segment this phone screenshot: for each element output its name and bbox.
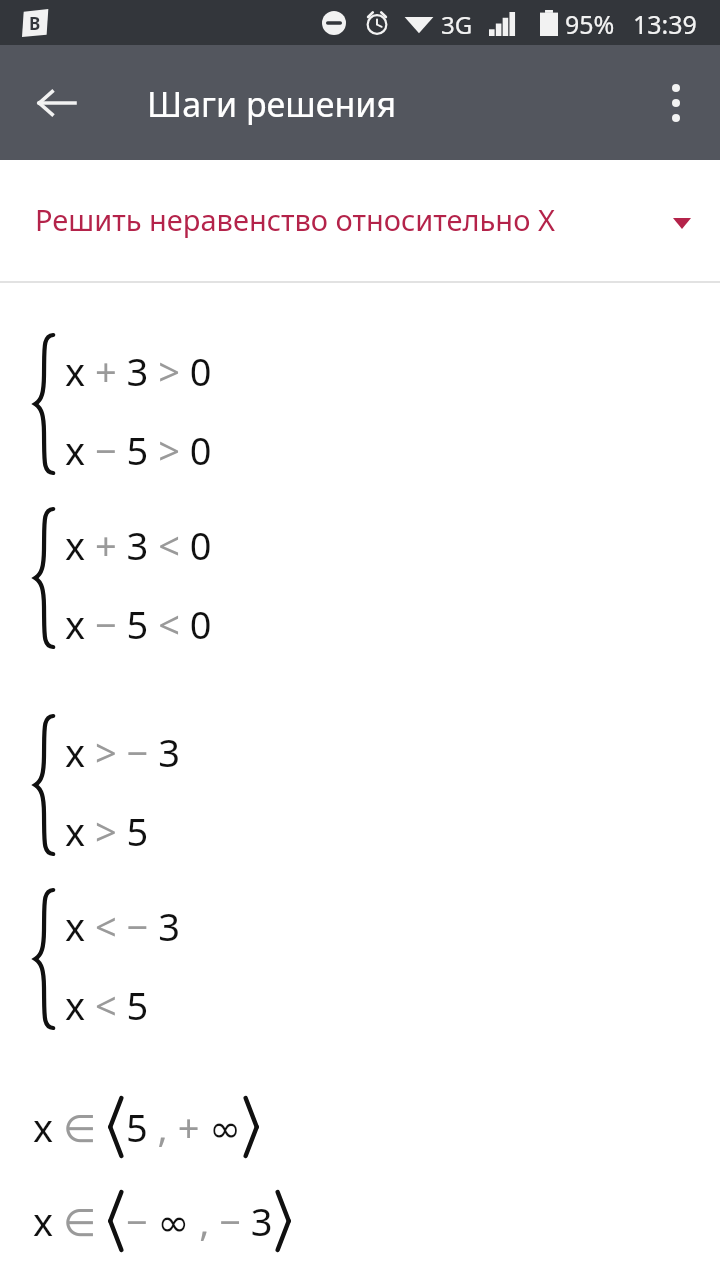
staticText: 95% bbox=[565, 7, 615, 41]
staticText: x < 5 bbox=[65, 979, 149, 1031]
staticText: x ∈ bbox=[33, 1101, 106, 1153]
button[interactable]: Решить неравенство относительно X bbox=[0, 160, 720, 282]
staticText: x − 5 > 0 bbox=[65, 424, 212, 476]
staticText: x > − 3 bbox=[65, 726, 180, 778]
staticText: x < − 3 bbox=[65, 900, 180, 952]
staticText: Решить неравенство относительно X bbox=[35, 200, 555, 239]
staticText: 3G bbox=[441, 8, 473, 41]
staticText: B bbox=[29, 12, 41, 35]
staticText: x − 5 < 0 bbox=[65, 598, 212, 650]
staticText: x > 5 bbox=[65, 805, 149, 857]
button[interactable]: Back bbox=[20, 67, 92, 139]
staticText: x + 3 > 0 bbox=[65, 345, 212, 397]
staticText: x + 3 < 0 bbox=[65, 519, 212, 571]
button[interactable]: More options bbox=[644, 67, 708, 139]
staticText: x ∈ bbox=[33, 1195, 106, 1247]
staticText: 13:39 bbox=[633, 7, 697, 41]
staticText: 5 , + ∞ bbox=[126, 1101, 241, 1153]
staticText: Шаги решения bbox=[147, 81, 397, 127]
staticText: − ∞ , − 3 bbox=[126, 1195, 273, 1247]
